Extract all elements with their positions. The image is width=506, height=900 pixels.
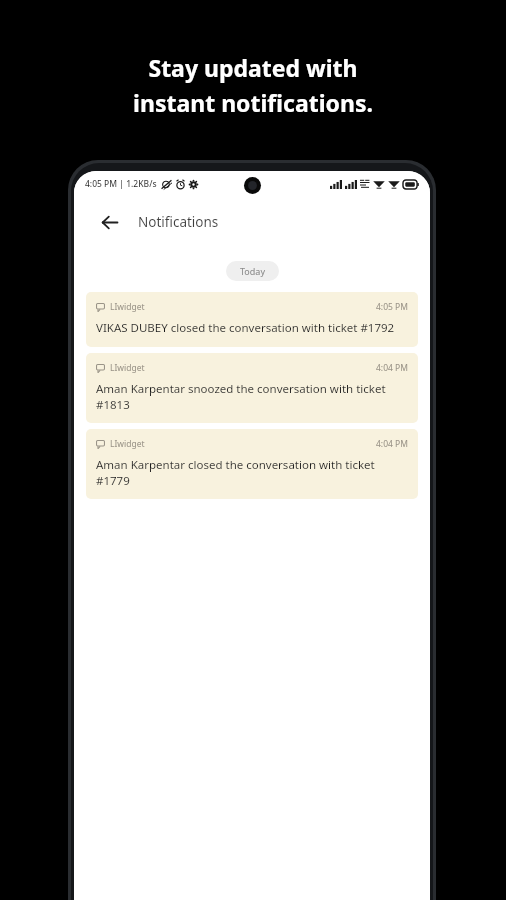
button[interactable]: Today	[226, 261, 279, 281]
staticText: Notifications	[138, 213, 219, 231]
staticText: LIwidget	[110, 438, 145, 450]
staticText: VIKAS DUBEY closed the conversation with…	[96, 320, 395, 336]
staticText: 4:04 PM	[376, 438, 408, 450]
staticText: Today	[240, 265, 265, 277]
staticText: Stay updated with	[148, 52, 358, 83]
staticText: instant notifications.	[133, 87, 373, 118]
button[interactable]: LIwidget	[86, 292, 418, 347]
button[interactable]: Back	[92, 205, 126, 239]
staticText: LIwidget	[110, 362, 145, 374]
button[interactable]: LIwidget	[86, 429, 418, 499]
staticText: 4:04 PM	[376, 362, 408, 374]
staticText: 4:05 PM | 1.2KB/s	[85, 178, 157, 190]
staticText: Aman Karpentar snoozed the conversation …	[96, 381, 408, 412]
staticText: LIwidget	[110, 301, 145, 313]
staticText: 4:05 PM	[376, 301, 408, 313]
button[interactable]: LIwidget	[86, 353, 418, 423]
staticText: Aman Karpentar closed the conversation w…	[96, 457, 408, 488]
